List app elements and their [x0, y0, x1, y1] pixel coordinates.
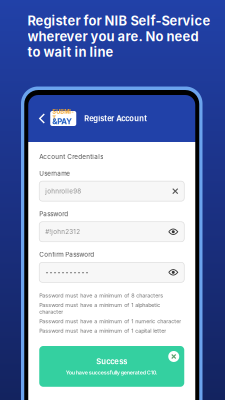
staticText: Password must have a minimum of 8 charac…	[39, 292, 163, 299]
staticText: Register Account	[84, 114, 147, 123]
staticText: Password must have a minimum of 1 alphab…	[39, 302, 160, 315]
button[interactable]: johnrolle98	[39, 181, 184, 201]
staticText: johnrolle98	[45, 187, 81, 195]
staticText: Username	[39, 170, 70, 177]
button[interactable]: Back	[34, 109, 50, 127]
button[interactable]: #!john2312	[39, 222, 184, 242]
staticText: You have successfully generated C10.	[66, 369, 158, 376]
staticText: •••••••••••	[45, 268, 89, 276]
staticText: SUBMIT	[52, 108, 74, 122]
staticText: Confirm Password	[39, 251, 94, 258]
staticText: Password must have a minimum of 1 capita…	[39, 327, 166, 334]
staticText: Success	[96, 357, 127, 366]
staticText: Register for NIB Self-Service wherever y…	[27, 13, 210, 60]
button[interactable]: Success	[39, 346, 184, 387]
staticText: &PAY	[52, 117, 72, 126]
button[interactable]: •••••••••••	[39, 262, 184, 282]
staticText: Password	[39, 210, 68, 218]
staticText: Account Credentials	[39, 153, 103, 161]
staticText: Password must have a minimum of 1 numeri…	[39, 318, 181, 324]
staticText: #!john2312	[45, 228, 80, 236]
